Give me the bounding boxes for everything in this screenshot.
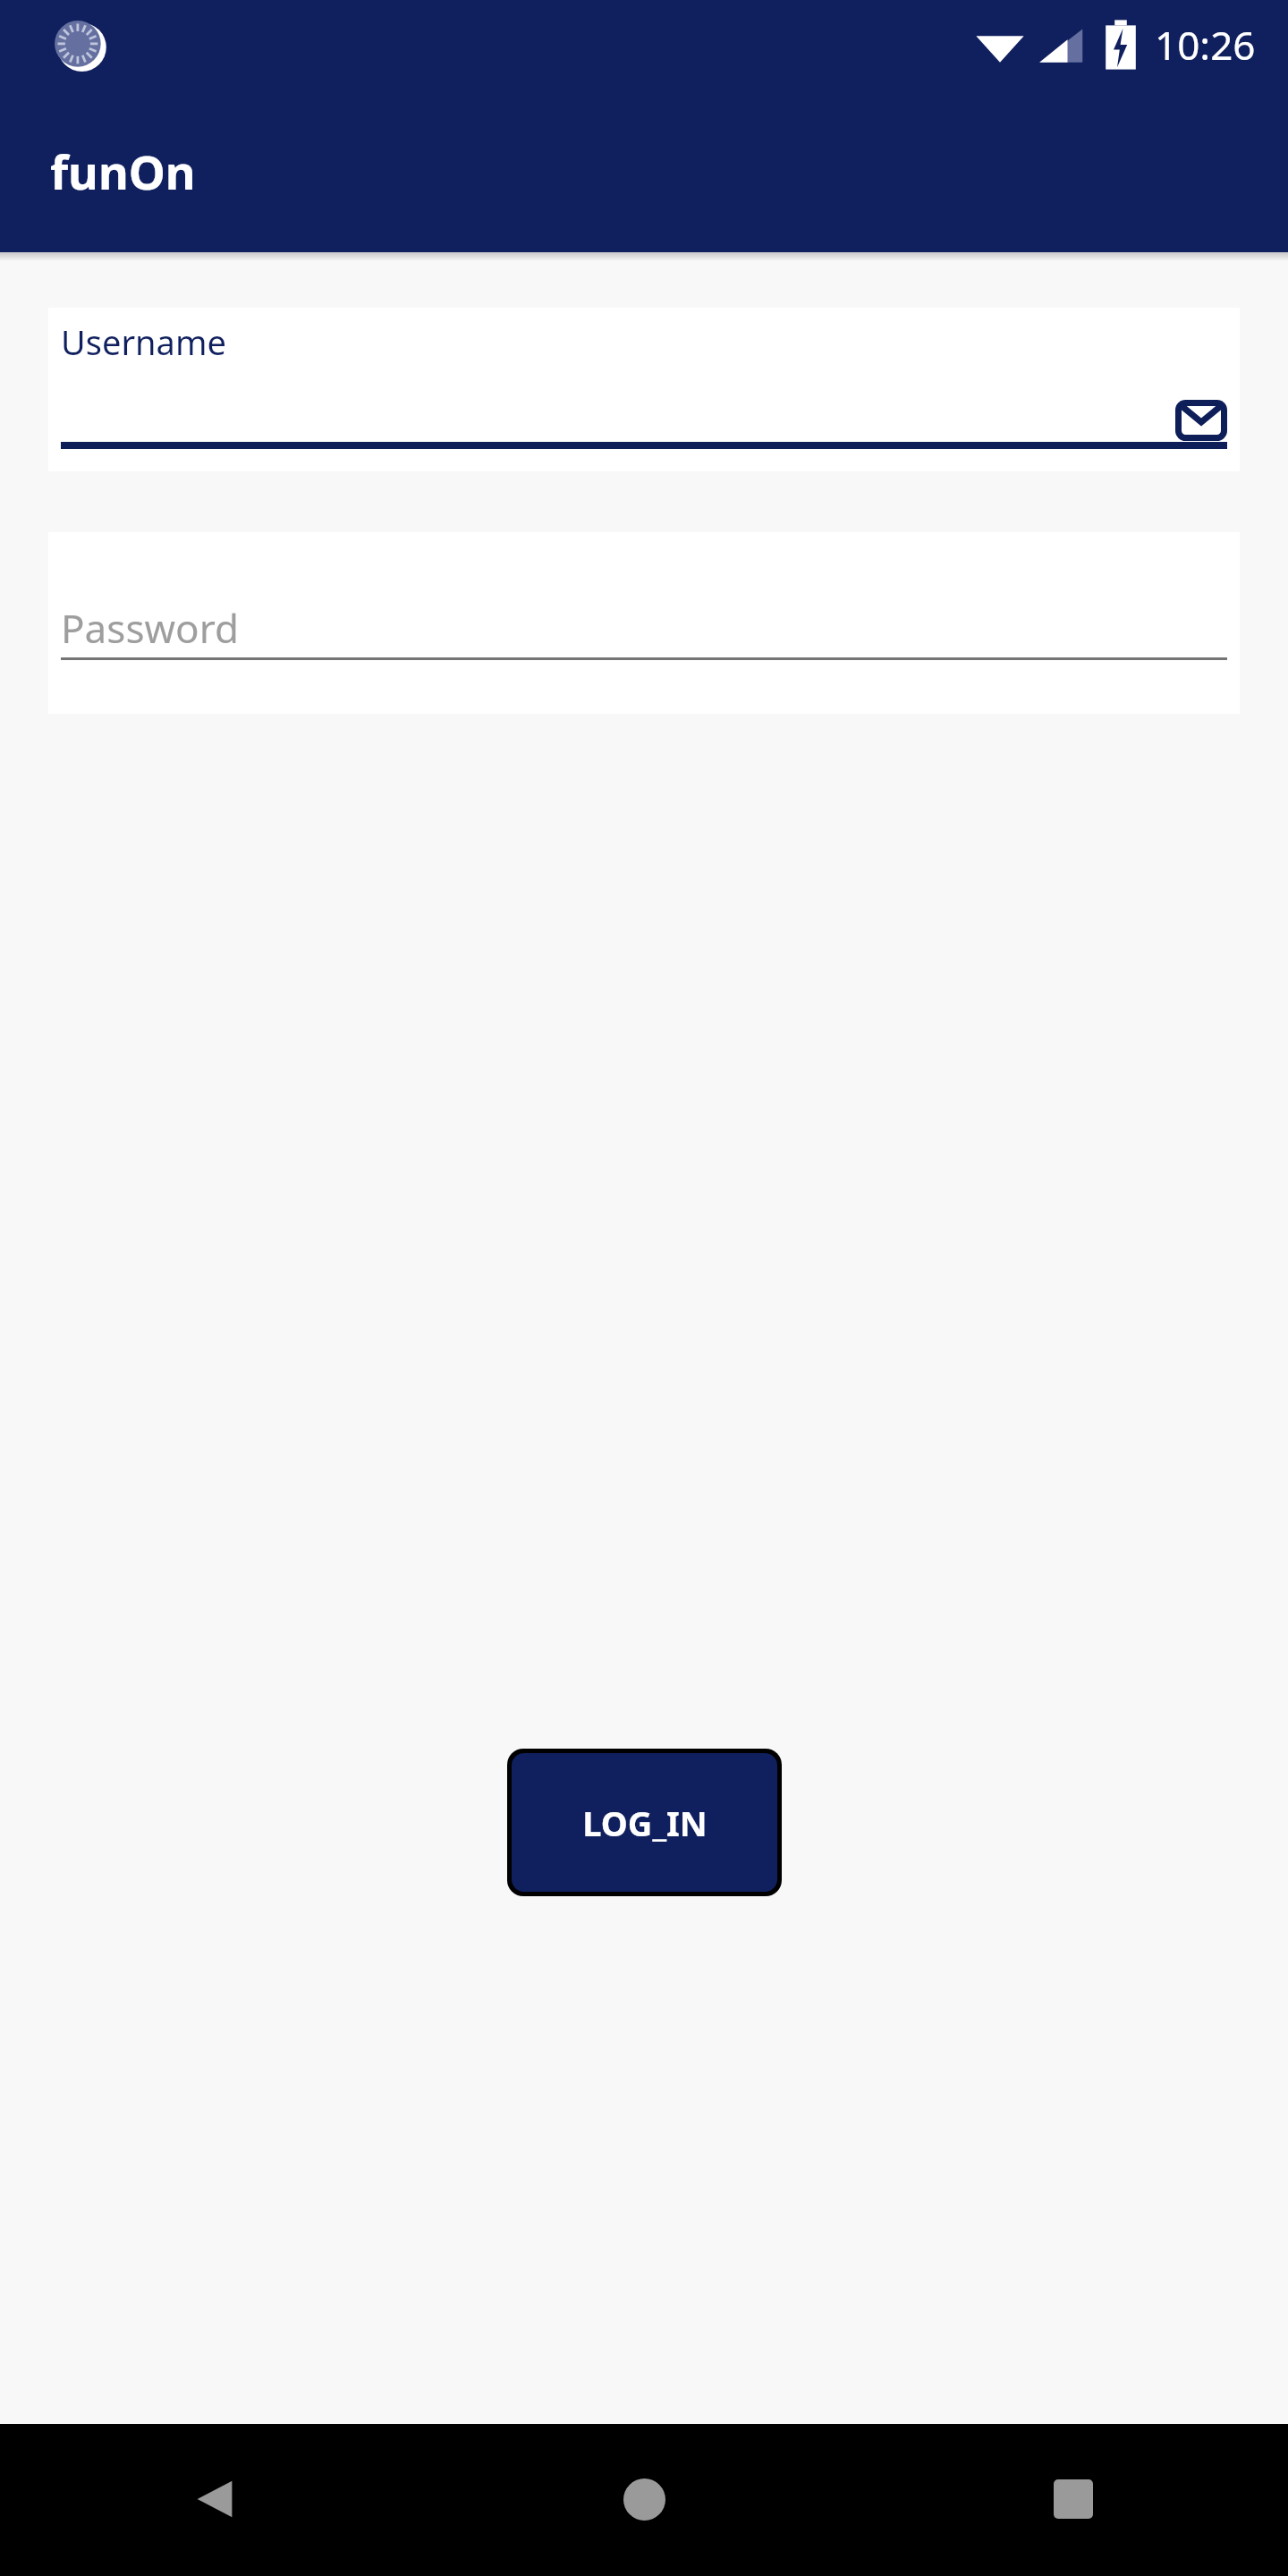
button[interactable]: Back <box>0 2424 429 2576</box>
button[interactable]: LOG_IN <box>512 1753 777 1892</box>
staticText: 10:26 <box>1155 18 1256 72</box>
staticText: Username <box>61 318 226 365</box>
button[interactable]: Home <box>429 2424 859 2576</box>
other: Email <box>1175 400 1227 441</box>
staticText: LOG_IN <box>582 1800 708 1846</box>
button[interactable]: Username <box>48 308 1240 471</box>
button[interactable]: Recent apps <box>859 2424 1288 2576</box>
staticText: Password <box>61 601 240 655</box>
staticText: funOn <box>50 140 196 203</box>
button[interactable]: Password <box>48 532 1240 714</box>
